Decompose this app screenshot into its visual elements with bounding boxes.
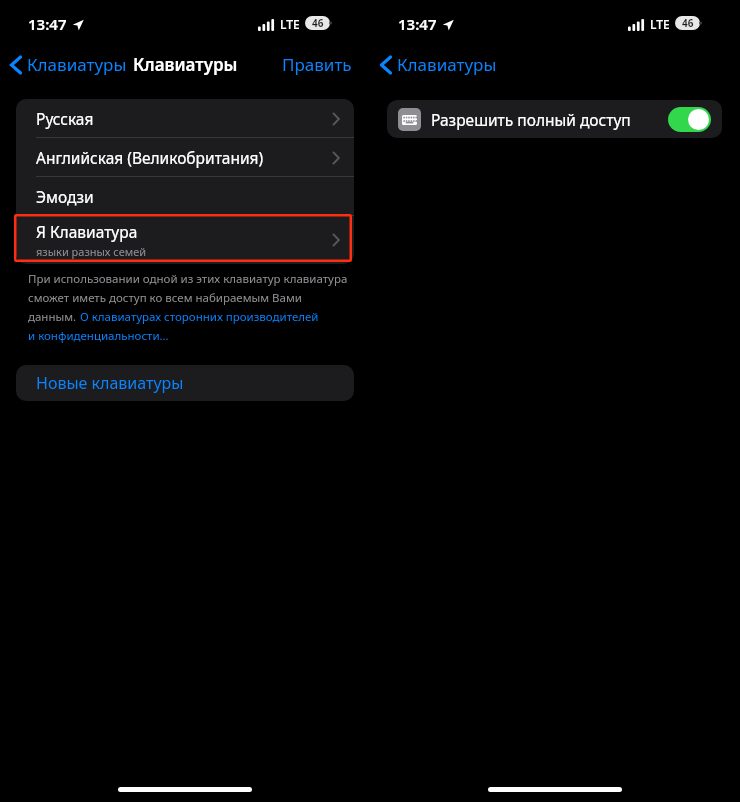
button[interactable]: Клавиатуры [380, 53, 497, 76]
staticText: Разрешить полный доступ [431, 109, 631, 130]
button[interactable]: Полный доступ [668, 107, 711, 132]
staticText: 13:47 [28, 14, 67, 34]
staticText: Новые клавиатуры [36, 372, 184, 394]
button[interactable]: Русская [16, 99, 354, 138]
staticText: сможет иметь доступ ко всем набираемым В… [28, 290, 302, 306]
button[interactable]: Эмодзи [16, 177, 354, 216]
staticText: Русская [36, 108, 94, 129]
staticText: Клавиатуры [397, 53, 497, 76]
staticText: Я Клавиатура [36, 221, 138, 242]
button[interactable]: Я Клавиатура [16, 216, 354, 264]
button[interactable]: Новые клавиатуры [16, 365, 354, 401]
staticText: 46 [682, 16, 694, 30]
staticText: LTE [280, 16, 300, 32]
button[interactable]: Английская (Великобритания) [16, 138, 354, 177]
staticText: языки разных семей [36, 244, 147, 259]
staticText: Эмодзи [36, 186, 94, 207]
staticText: данным. [28, 309, 80, 325]
staticText: LTE [650, 16, 670, 32]
staticText: 46 [312, 16, 324, 30]
button[interactable]: О клавиатурах сторонних производителей [80, 309, 319, 325]
button[interactable]: Клавиатуры [10, 53, 127, 76]
button[interactable]: Разрешить полный доступ [387, 100, 722, 138]
staticText: При использовании одной из этих клавиату… [28, 271, 348, 287]
staticText: Английская (Великобритания) [36, 147, 264, 168]
button[interactable]: Править [282, 53, 352, 76]
button[interactable]: и конфиденциальности… [28, 328, 169, 344]
staticText: Клавиатуры [27, 53, 127, 76]
staticText: 13:47 [398, 14, 437, 34]
staticText: Клавиатуры [133, 53, 238, 76]
